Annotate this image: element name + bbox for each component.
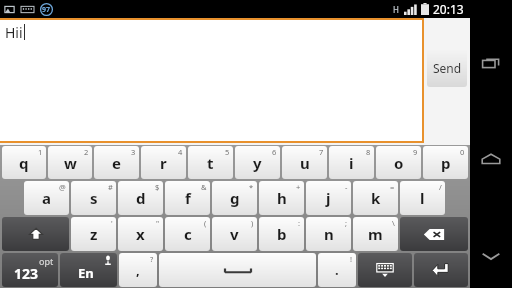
staticText: 9 [413, 147, 418, 157]
button[interactable]: o [376, 146, 421, 179]
button[interactable]: y [235, 146, 280, 179]
staticText: z [90, 224, 98, 244]
staticText: l [420, 188, 425, 208]
staticText: " [156, 218, 160, 228]
staticText: Send [433, 60, 462, 76]
button[interactable]: q [2, 146, 46, 179]
button[interactable]: h [259, 181, 304, 215]
button[interactable]: d [118, 181, 163, 215]
staticText: 97 [42, 5, 51, 15]
button[interactable]: n [306, 217, 351, 251]
button[interactable]: g [212, 181, 257, 215]
button[interactable]: i [329, 146, 374, 179]
staticText: / [439, 182, 442, 192]
button[interactable]: Enter [414, 253, 468, 287]
staticText: h [277, 188, 287, 208]
staticText: g [230, 188, 240, 208]
staticText: En [78, 264, 94, 282]
staticText: 1 [38, 147, 43, 157]
button[interactable]: Symbols [2, 253, 58, 287]
staticText: ( [204, 218, 207, 228]
staticText: @ [59, 182, 66, 192]
button[interactable]: z [71, 217, 116, 251]
staticText: i [349, 153, 354, 173]
staticText: ) [251, 218, 254, 228]
staticText: c [184, 224, 192, 244]
staticText: $ [155, 182, 160, 192]
staticText: \ [392, 218, 395, 228]
staticText: + [296, 182, 301, 192]
button[interactable]: x [118, 217, 163, 251]
staticText: H [393, 4, 399, 15]
staticText: ? [150, 254, 154, 264]
button[interactable]: Back [471, 236, 511, 276]
button[interactable]: c [165, 217, 210, 251]
staticText: Hii [5, 23, 23, 42]
button[interactable]: t [188, 146, 233, 179]
staticText: u [300, 153, 310, 173]
button[interactable]: r [141, 146, 186, 179]
button[interactable]: k [353, 181, 398, 215]
button[interactable]: Shift [2, 217, 69, 251]
button[interactable]: Switch keyboard [358, 253, 412, 287]
staticText: 2 [84, 147, 89, 157]
staticText: f [185, 188, 191, 208]
staticText: , [136, 261, 140, 279]
button[interactable]: a [24, 181, 69, 215]
staticText: e [112, 153, 121, 173]
staticText: - [345, 182, 348, 192]
button[interactable]: j [306, 181, 351, 215]
button[interactable]: . [318, 253, 356, 287]
button[interactable]: f [165, 181, 210, 215]
staticText: p [441, 153, 451, 173]
staticText: 5 [225, 147, 230, 157]
staticText: a [42, 188, 51, 208]
button[interactable]: , [119, 253, 157, 287]
button[interactable]: e [94, 146, 139, 179]
button[interactable]: w [48, 146, 92, 179]
staticText: m [368, 224, 383, 244]
staticText: o [394, 153, 404, 173]
button[interactable]: m [353, 217, 398, 251]
button[interactable]: Recents [471, 44, 511, 84]
staticText: 123 [14, 264, 39, 283]
staticText: 4 [178, 147, 183, 157]
staticText: 0 [460, 147, 465, 157]
staticText: r [160, 153, 167, 173]
staticText: 20:13 [433, 1, 464, 17]
button[interactable]: Hii [0, 20, 422, 141]
staticText: = [390, 182, 395, 192]
button[interactable]: u [282, 146, 327, 179]
staticText: 8 [366, 147, 371, 157]
button[interactable]: Home [471, 140, 511, 180]
staticText: ; [345, 218, 348, 228]
button[interactable]: Language [60, 253, 117, 287]
staticText: * [249, 182, 254, 192]
button[interactable]: p [423, 146, 468, 179]
button[interactable]: v [212, 217, 257, 251]
button[interactable]: s [71, 181, 116, 215]
staticText: 6 [272, 147, 277, 157]
staticText: b [277, 224, 287, 244]
staticText: : [298, 218, 301, 228]
staticText: q [19, 153, 29, 173]
button[interactable]: Backspace [400, 217, 468, 251]
staticText: ' [111, 218, 113, 228]
staticText: k [371, 188, 381, 208]
staticText: t [207, 153, 214, 173]
staticText: n [324, 224, 334, 244]
staticText: x [136, 224, 145, 244]
staticText: & [201, 182, 207, 192]
button[interactable]: l [400, 181, 445, 215]
button[interactable]: b [259, 217, 304, 251]
staticText: d [136, 188, 146, 208]
staticText: s [90, 188, 98, 208]
staticText: opt [39, 255, 54, 267]
staticText: v [230, 224, 239, 244]
staticText: j [326, 188, 331, 208]
button[interactable]: Space [159, 253, 316, 287]
button[interactable]: Send [427, 49, 467, 87]
staticText: 3 [131, 147, 136, 157]
staticText: y [253, 153, 262, 173]
staticText: . [335, 261, 339, 279]
